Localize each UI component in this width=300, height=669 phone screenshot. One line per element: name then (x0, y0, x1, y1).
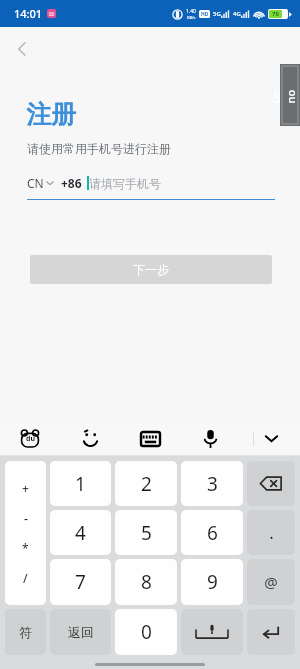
staticText: 3 (207, 471, 218, 497)
staticText: - (24, 510, 28, 526)
staticText: HD (201, 11, 209, 18)
button[interactable]: Delete (247, 461, 295, 506)
button[interactable]: 返回 (50, 609, 111, 655)
staticText: Lenovo. (267, 87, 300, 103)
staticText: 符 (19, 624, 32, 640)
button[interactable]: 下一步 (30, 255, 272, 284)
staticText: du (26, 434, 35, 444)
staticText: CN (27, 175, 44, 191)
button[interactable]: Space / voice (181, 609, 243, 655)
staticText: 2 (141, 471, 152, 497)
staticText: * (22, 540, 29, 556)
button[interactable]: 2 (115, 461, 177, 506)
button[interactable]: 6 (181, 510, 243, 555)
button[interactable]: 7 (50, 559, 111, 605)
button[interactable]: Lenovo (280, 64, 300, 126)
staticText: KB/s (187, 15, 196, 20)
staticText: @ (264, 572, 278, 592)
staticText: 1.40 (186, 8, 196, 15)
staticText: 6 (207, 520, 218, 546)
staticText: . (269, 521, 274, 544)
button[interactable]: @ (247, 559, 295, 605)
button[interactable]: Voice input (193, 422, 227, 455)
staticText: 4 (75, 520, 86, 546)
staticText: / (23, 570, 28, 586)
staticText: 70 (272, 10, 279, 18)
staticText: 请填写手机号 (89, 176, 161, 191)
button[interactable]: 3 (181, 461, 243, 506)
button[interactable]: Emoji (73, 422, 107, 455)
button[interactable]: 0 (115, 609, 177, 655)
staticText: 下一步 (133, 262, 169, 277)
button[interactable]: 1 (50, 461, 111, 506)
button[interactable]: Baidu input (13, 422, 47, 455)
button[interactable]: 5 (115, 510, 177, 555)
staticText: +86 (61, 175, 82, 191)
button[interactable]: 8 (115, 559, 177, 605)
button[interactable]: 4 (50, 510, 111, 555)
staticText: 5G (213, 10, 221, 18)
button[interactable]: Operators (5, 461, 46, 605)
button[interactable]: CN (27, 175, 54, 191)
staticText: 14:01 (14, 6, 43, 21)
staticText: 注册 (26, 99, 76, 130)
staticText: + (22, 480, 29, 496)
button[interactable]: . (247, 510, 295, 555)
staticText: 9 (207, 569, 218, 595)
staticText: 请使用常用手机号进行注册 (27, 141, 171, 156)
staticText: 返回 (68, 624, 94, 640)
staticText: 0 (141, 619, 152, 645)
staticText: 1 (75, 471, 86, 497)
button[interactable]: Back (0, 27, 44, 71)
staticText: 4G (233, 10, 241, 18)
button[interactable]: 9 (181, 559, 243, 605)
button[interactable]: Keyboard layout (133, 422, 167, 455)
staticText: 5 (141, 520, 152, 546)
button[interactable]: Hide keyboard (254, 422, 288, 455)
staticText: 8 (141, 569, 152, 595)
button[interactable]: Enter (247, 609, 295, 655)
staticText: 7 (75, 569, 86, 595)
button[interactable]: 符 (5, 609, 46, 655)
